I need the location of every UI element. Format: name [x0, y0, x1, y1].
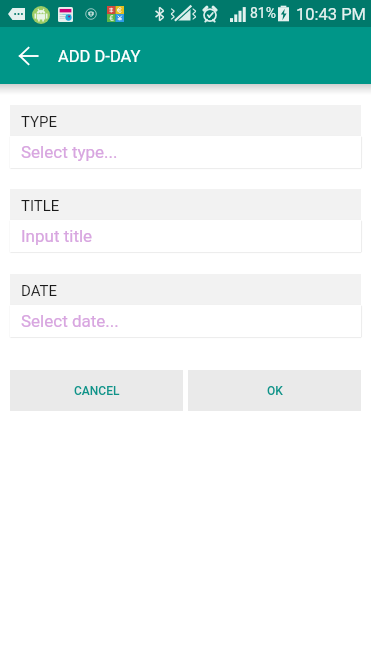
staticText: Select type... — [21, 142, 118, 162]
staticText: CANCEL — [74, 384, 120, 398]
staticText: OK — [267, 384, 283, 398]
staticText: TYPE — [21, 113, 58, 131]
button[interactable]: Select date... — [10, 305, 361, 337]
button[interactable]: Back — [7, 35, 49, 77]
staticText: Select date... — [21, 311, 119, 331]
staticText: 81% — [250, 5, 276, 21]
staticText: DATE — [21, 282, 58, 300]
button[interactable]: Select type... — [10, 136, 361, 168]
staticText: 10:43 PM — [296, 5, 366, 24]
button[interactable]: CANCEL — [10, 370, 183, 411]
staticText: ADD D-DAY — [58, 47, 141, 66]
button[interactable]: Input title — [10, 220, 361, 252]
staticText: TITLE — [21, 197, 60, 215]
button[interactable]: OK — [188, 370, 361, 411]
staticText: Input title — [21, 226, 93, 246]
